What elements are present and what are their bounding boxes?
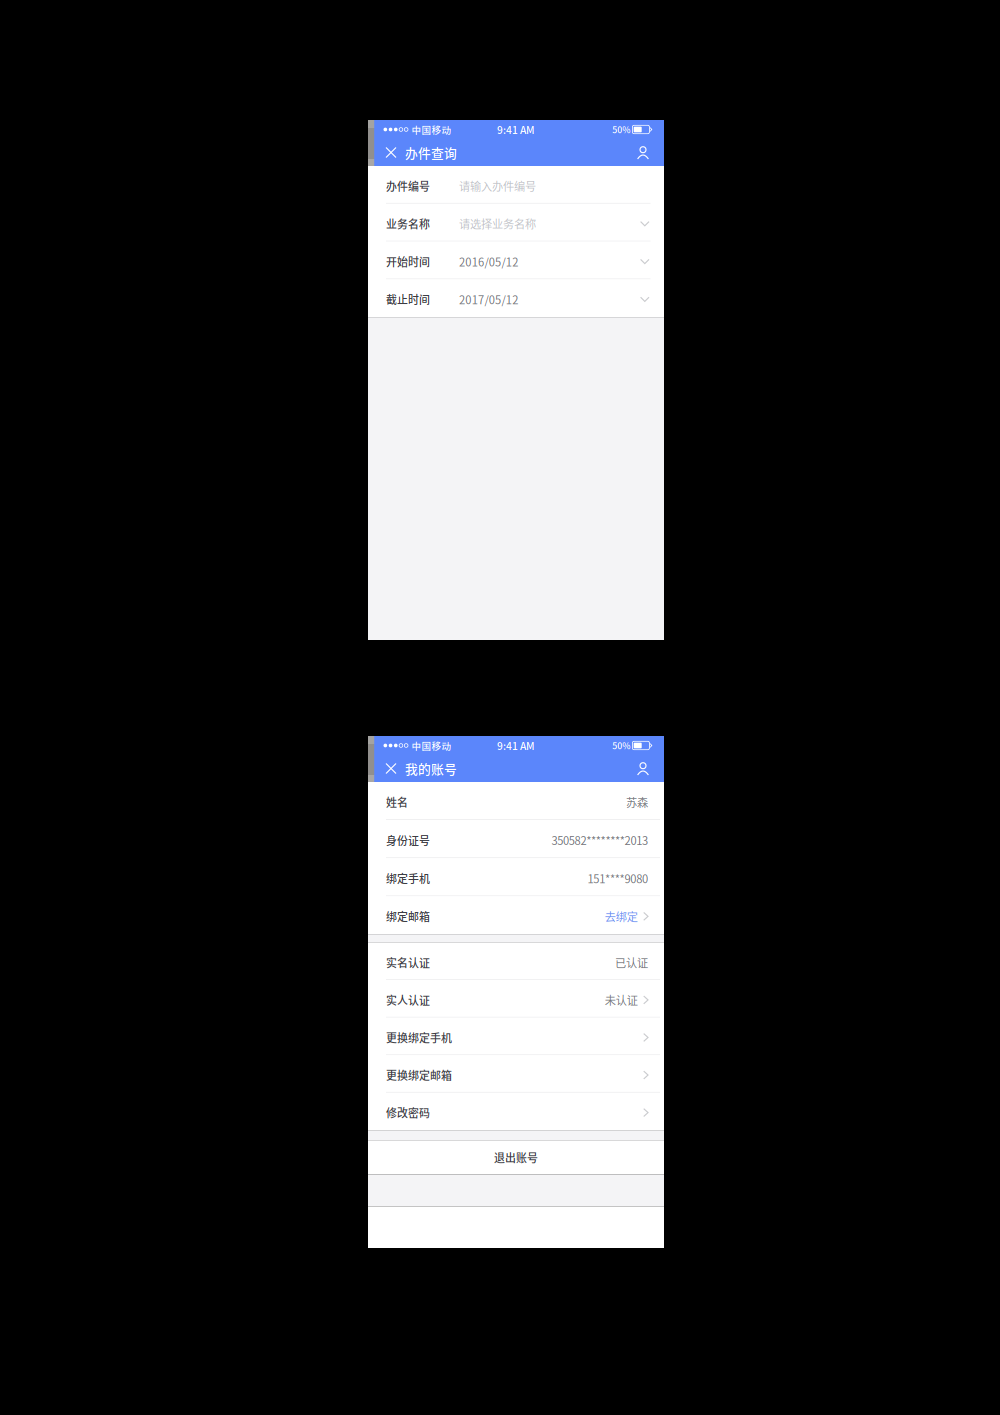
staticText: 更换绑定手机 <box>386 1030 452 1045</box>
staticText: 我的账号 <box>405 759 457 778</box>
staticText: 办件查询 <box>405 143 457 162</box>
button[interactable]: Close <box>377 755 405 782</box>
button[interactable]: 退出账号 <box>368 1141 664 1174</box>
staticText: 请选择业务名称 <box>459 216 536 232</box>
staticText: 中国移动 <box>411 738 451 752</box>
staticText: 50% <box>612 739 630 752</box>
staticText: 身份证号 <box>386 832 430 848</box>
staticText: 办件编号 <box>386 178 430 194</box>
staticText: 9:41 AM <box>497 122 535 137</box>
button[interactable]: 实人认证 <box>368 980 664 1018</box>
staticText: 更换绑定邮箱 <box>386 1067 452 1083</box>
staticText: 50% <box>612 123 630 136</box>
staticText: 2016/05/12 <box>459 253 518 270</box>
staticText: 姓名 <box>386 794 408 810</box>
button[interactable]: 身份证号 <box>368 820 664 858</box>
staticText: 截止时间 <box>386 291 430 307</box>
button[interactable]: Close <box>377 139 405 166</box>
staticText: 去绑定 <box>605 908 638 924</box>
button[interactable]: 办件编号 <box>368 166 664 204</box>
staticText: 绑定邮箱 <box>386 908 430 924</box>
staticText: 业务名称 <box>386 216 430 232</box>
staticText: 请输入办件编号 <box>459 178 536 194</box>
button[interactable]: 绑定手机 <box>368 858 664 896</box>
staticText: 中国移动 <box>411 122 451 136</box>
button[interactable]: 修改密码 <box>368 1093 664 1130</box>
button[interactable]: 我的账号 <box>405 755 457 782</box>
button[interactable]: 开始时间 <box>368 242 664 279</box>
button[interactable]: Account <box>628 755 658 782</box>
button[interactable]: 更换绑定邮箱 <box>368 1055 664 1093</box>
button[interactable]: Account <box>628 139 658 166</box>
staticText: 151****9080 <box>587 870 648 886</box>
staticText: 2017/05/12 <box>459 291 518 307</box>
staticText: 退出账号 <box>494 1150 538 1165</box>
staticText: 实人认证 <box>386 992 430 1008</box>
staticText: 350582********2013 <box>551 832 648 848</box>
button[interactable]: 实名认证 <box>368 943 664 980</box>
button[interactable]: 业务名称 <box>368 204 664 242</box>
staticText: 苏森 <box>626 794 648 810</box>
button[interactable]: 姓名 <box>368 782 664 820</box>
staticText: 绑定手机 <box>386 870 430 886</box>
staticText: 9:41 AM <box>497 738 535 753</box>
staticText: 开始时间 <box>386 254 430 269</box>
staticText: 未认证 <box>605 992 638 1008</box>
button[interactable]: 更换绑定手机 <box>368 1018 664 1055</box>
staticText: 修改密码 <box>386 1105 430 1120</box>
staticText: 已认证 <box>615 954 648 970</box>
staticText: 实名认证 <box>386 954 430 970</box>
button[interactable]: 绑定邮箱 <box>368 896 664 934</box>
button[interactable]: 截止时间 <box>368 279 664 317</box>
button[interactable]: 办件查询 <box>405 139 457 166</box>
